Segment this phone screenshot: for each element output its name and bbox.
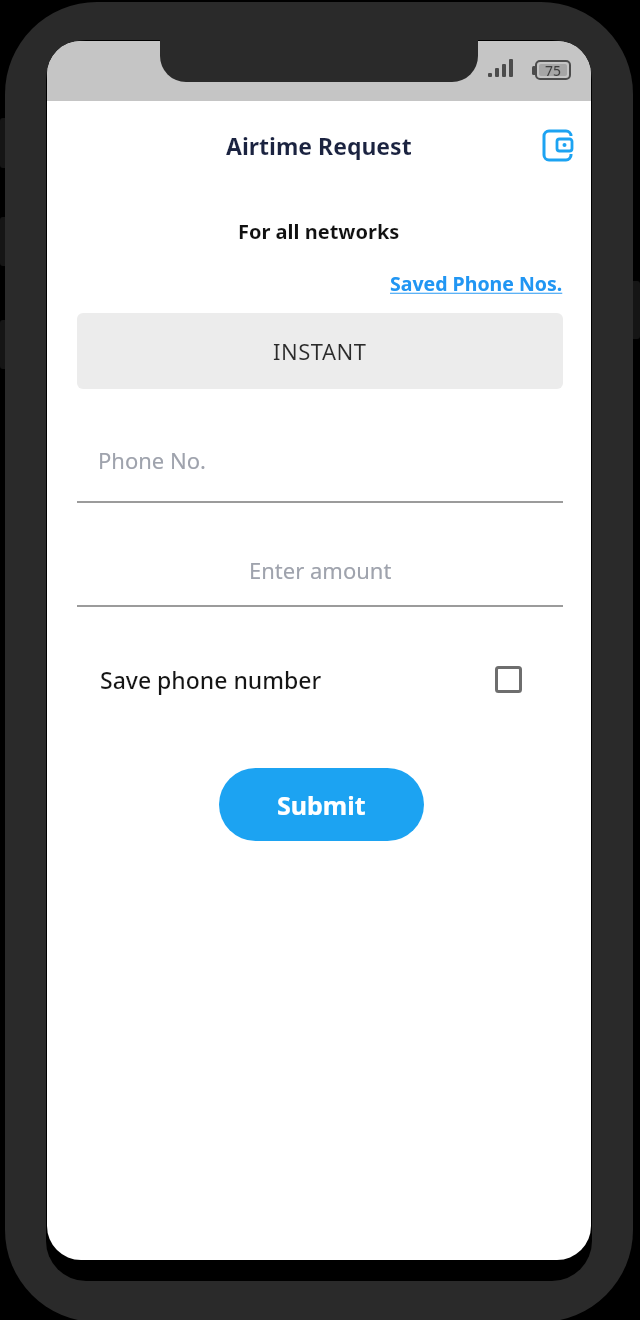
button[interactable]: Phone No.: [77, 440, 563, 480]
button[interactable]: Enter amount: [77, 550, 563, 590]
staticText: Saved Phone Nos.: [390, 270, 563, 297]
staticText: Phone No.: [98, 445, 206, 475]
staticText: INSTANT: [273, 336, 367, 366]
staticText: For all networks: [238, 218, 400, 245]
staticText: Save phone number: [100, 664, 322, 695]
staticText: Submit: [277, 788, 366, 822]
staticText: Airtime Request: [226, 130, 412, 160]
staticText: 75: [545, 61, 562, 80]
button[interactable]: Save phone number: [77, 659, 563, 699]
button[interactable]: Submit: [219, 768, 424, 841]
button[interactable]: Saved Phone Nos.: [320, 269, 563, 297]
button[interactable]: [538, 125, 578, 165]
button[interactable]: INSTANT: [77, 313, 563, 389]
staticText: Enter amount: [249, 555, 392, 585]
